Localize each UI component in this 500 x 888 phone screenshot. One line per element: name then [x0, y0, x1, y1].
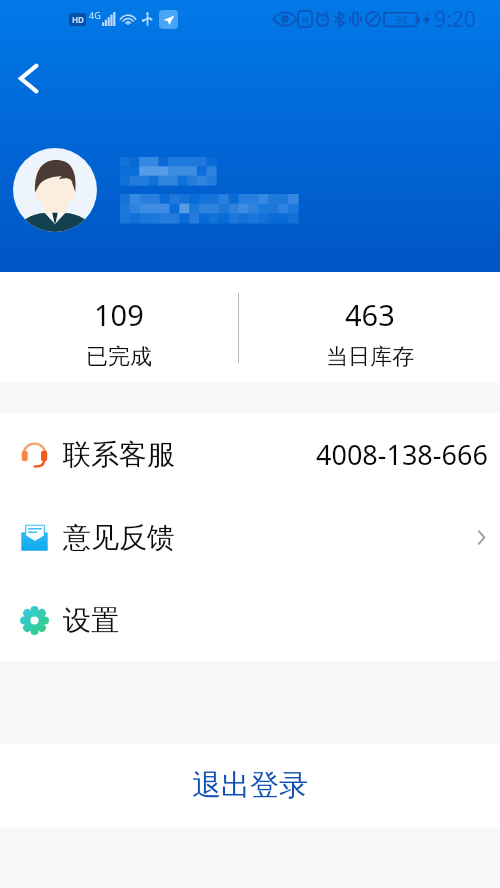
- staticText: 463: [345, 295, 395, 334]
- staticText: 联系客服: [63, 437, 175, 472]
- staticText: 109: [94, 295, 144, 334]
- button[interactable]: 设置: [0, 579, 500, 661]
- button[interactable]: Back: [6, 53, 50, 103]
- staticText: HD: [72, 14, 84, 25]
- button[interactable]: 意见反馈: [0, 496, 500, 579]
- staticText: N: [302, 14, 309, 25]
- button[interactable]: [13, 148, 303, 232]
- staticText: 退出登录: [192, 767, 308, 804]
- staticText: 当日库存: [326, 343, 414, 371]
- staticText: 4008-138-666: [316, 436, 488, 473]
- staticText: 已完成: [86, 343, 152, 371]
- staticText: 4G: [89, 9, 101, 21]
- button[interactable]: 109: [0, 272, 238, 383]
- button[interactable]: 463: [239, 272, 500, 383]
- staticText: 9:20: [434, 5, 476, 34]
- staticText: 设置: [63, 603, 119, 638]
- staticText: 98: [396, 13, 408, 27]
- button[interactable]: 退出登录: [0, 744, 500, 828]
- staticText: 意见反馈: [63, 520, 175, 555]
- button[interactable]: 联系客服: [0, 413, 500, 496]
